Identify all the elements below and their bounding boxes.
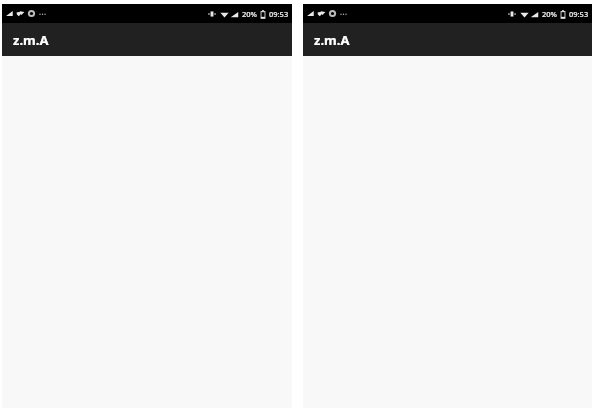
staticText: 09:53 bbox=[569, 9, 589, 19]
staticText: 20% bbox=[542, 9, 557, 19]
button[interactable]: z.m.A bbox=[2, 23, 292, 56]
staticText: 20% bbox=[242, 9, 257, 19]
button[interactable]: z.m.A bbox=[303, 23, 592, 56]
staticText: z.m.A bbox=[314, 31, 350, 49]
staticText: z.m.A bbox=[13, 31, 49, 49]
staticText: 09:53 bbox=[269, 9, 289, 19]
